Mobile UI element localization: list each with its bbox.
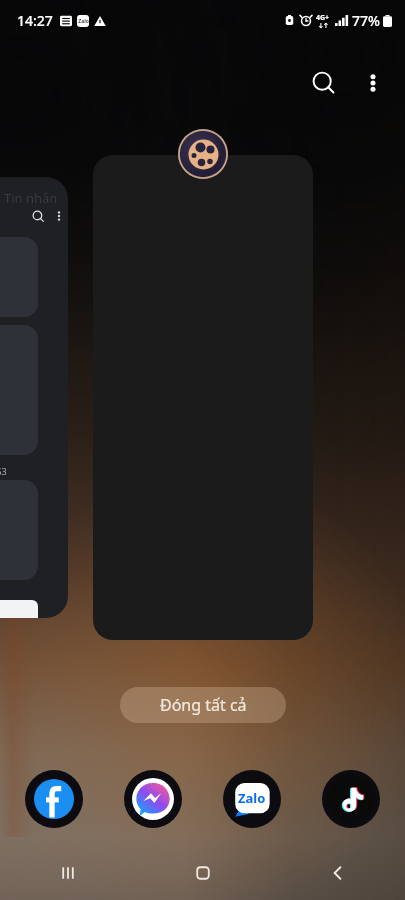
button[interactable] — [93, 155, 313, 640]
staticText: Zalo — [78, 18, 89, 25]
button[interactable]: TikTok — [315, 763, 387, 835]
button[interactable]: Zalo — [216, 763, 288, 835]
staticText: :53 — [0, 465, 7, 477]
button[interactable]: Home — [135, 846, 270, 900]
staticText: 4G+ — [316, 13, 330, 23]
button[interactable]: Đóng tất cả — [120, 687, 286, 723]
button[interactable]: Facebook — [18, 763, 90, 835]
staticText: Đóng tất cả — [160, 694, 247, 716]
staticText: Tin nhắn — [4, 189, 58, 207]
button[interactable]: Search — [299, 58, 349, 108]
button[interactable]: Messenger — [117, 763, 189, 835]
staticText: Zalo — [238, 789, 266, 807]
staticText: 14:27 — [17, 11, 53, 30]
button[interactable]: Recents — [0, 846, 135, 900]
button[interactable]: More options — [349, 59, 397, 107]
button[interactable]: Tin nhắn — [0, 177, 68, 618]
staticText: 77% — [352, 11, 380, 30]
button[interactable]: Back — [270, 846, 405, 900]
